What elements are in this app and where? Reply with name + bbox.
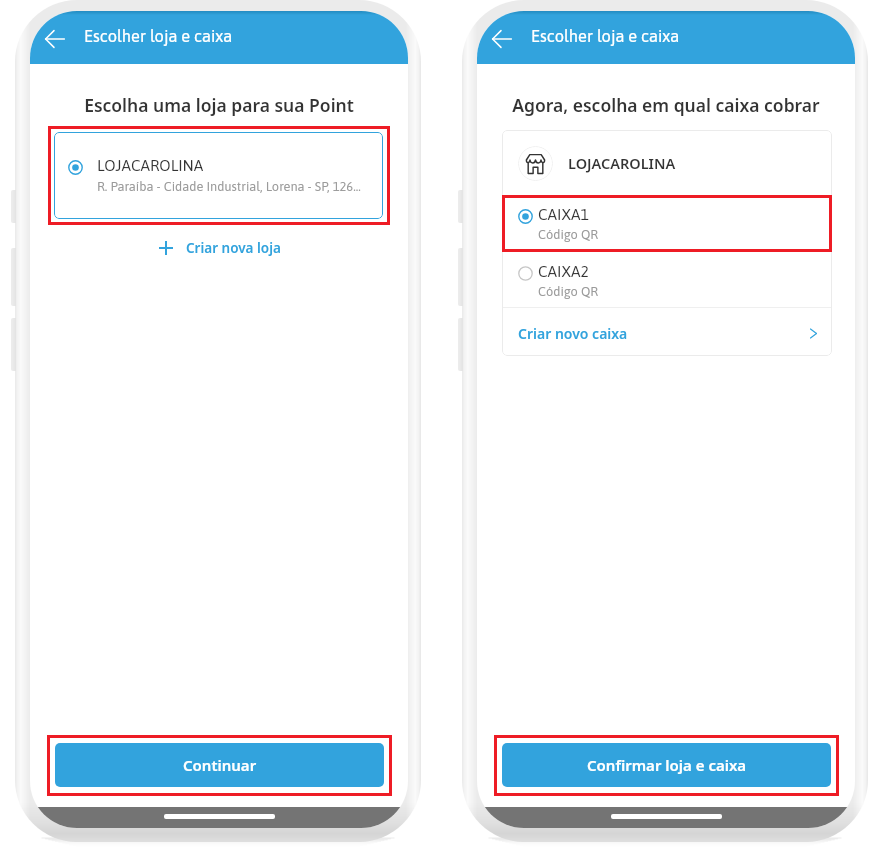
button[interactable]: LOJACAROLINA [54, 132, 383, 219]
staticText: Confirmar loja e caixa [587, 755, 747, 775]
button[interactable]: Continuar [55, 743, 384, 787]
button[interactable]: Confirmar loja e caixa [502, 743, 831, 787]
button[interactable]: CAIXA1 [502, 196, 832, 251]
staticText: Agora, escolha em qual caixa cobrar [477, 93, 855, 117]
staticText: LOJACAROLINA [97, 157, 204, 175]
staticText: Código QR [538, 284, 599, 299]
staticText: CAIXA1 [538, 206, 589, 224]
button[interactable]: LOJACAROLINA [518, 130, 832, 196]
staticText: CAIXA2 [538, 263, 589, 281]
staticText: Escolha uma loja para sua Point [30, 93, 408, 117]
staticText: Criar nova loja [186, 239, 281, 257]
staticText: Código QR [538, 227, 599, 242]
staticText: R. Paraíba - Cidade Industrial, Lorena -… [97, 179, 361, 194]
staticText: Criar novo caixa [518, 324, 628, 343]
button[interactable]: Voltar [486, 23, 517, 54]
staticText: Escolher loja e caixa [84, 27, 233, 46]
staticText: Escolher loja e caixa [531, 27, 680, 46]
button[interactable]: Criar novo caixa [518, 310, 819, 356]
button[interactable]: Voltar [39, 23, 70, 54]
staticText: Continuar [183, 755, 257, 775]
button[interactable]: Criar nova loja [159, 237, 281, 259]
button[interactable]: CAIXA2 [502, 253, 832, 308]
staticText: LOJACAROLINA [568, 153, 676, 173]
